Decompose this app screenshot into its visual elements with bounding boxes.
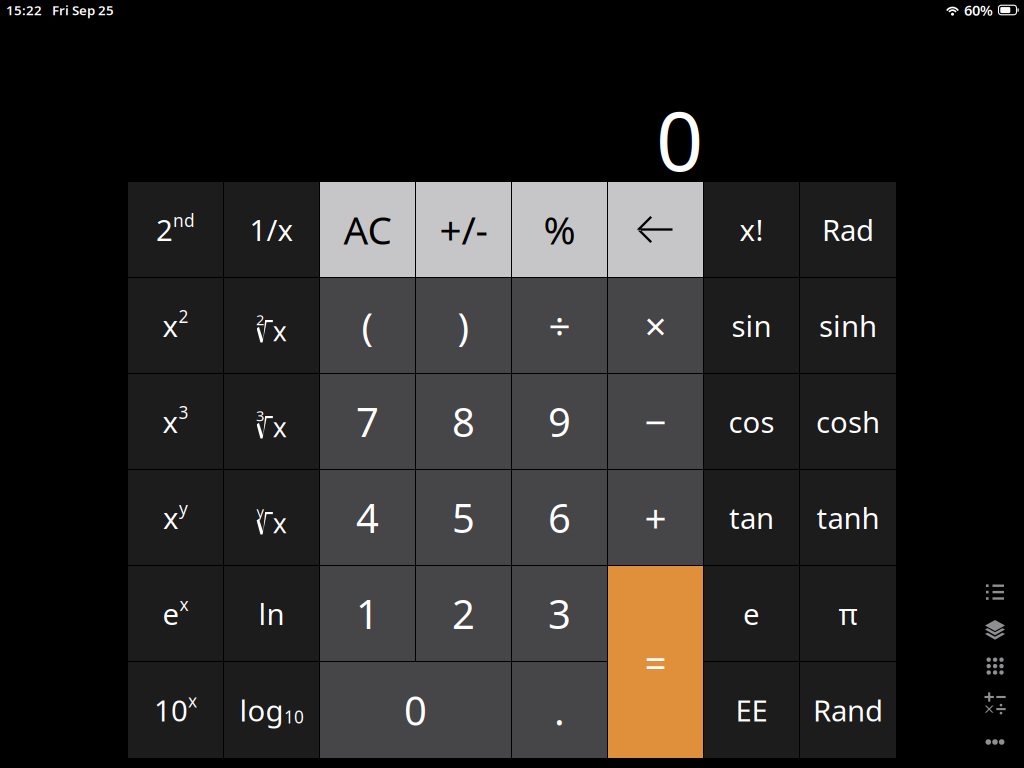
staticText: . bbox=[554, 683, 565, 736]
button[interactable]: x to the 3 bbox=[128, 374, 223, 469]
button[interactable]: tanh bbox=[800, 470, 896, 565]
button[interactable]: Paper tape bbox=[973, 612, 1017, 648]
staticText: π bbox=[838, 594, 857, 633]
button[interactable]: History bbox=[973, 574, 1017, 610]
staticText: 10 bbox=[284, 705, 304, 728]
button[interactable]: 3 bbox=[512, 566, 607, 661]
button[interactable]: % bbox=[512, 182, 607, 277]
staticText: 3 bbox=[548, 587, 571, 640]
staticText: 3 bbox=[178, 401, 188, 424]
staticText: +/- bbox=[439, 204, 487, 255]
button[interactable]: 8 bbox=[416, 374, 511, 469]
staticText: 9 bbox=[548, 395, 571, 448]
staticText: ) bbox=[457, 300, 469, 351]
button[interactable]: e bbox=[704, 566, 799, 661]
staticText: 2 bbox=[452, 587, 475, 640]
staticText: x bbox=[273, 313, 287, 349]
staticText: 1 bbox=[356, 587, 379, 640]
button[interactable]: 2 root of x bbox=[224, 278, 319, 373]
button[interactable]: AC bbox=[320, 182, 415, 277]
button[interactable]: 2 bbox=[416, 566, 511, 661]
button[interactable]: 4 bbox=[320, 470, 415, 565]
button[interactable]: Rand bbox=[800, 662, 896, 758]
staticText: Rand bbox=[813, 690, 883, 729]
staticText: 2 bbox=[156, 210, 173, 249]
staticText: log bbox=[239, 690, 283, 729]
staticText: nd bbox=[173, 209, 195, 232]
button[interactable]: 0 bbox=[320, 662, 511, 758]
staticText: ÷ bbox=[548, 300, 570, 351]
button[interactable]: sin bbox=[704, 278, 799, 373]
button[interactable]: ln bbox=[224, 566, 319, 661]
button[interactable]: 9 bbox=[512, 374, 607, 469]
staticText: 6 bbox=[548, 491, 571, 544]
staticText: AC bbox=[343, 204, 391, 255]
staticText: ln bbox=[258, 594, 284, 633]
button[interactable]: y root of x bbox=[224, 470, 319, 565]
staticText: sin bbox=[731, 306, 771, 345]
button[interactable]: + bbox=[608, 470, 703, 565]
staticText: 5 bbox=[452, 491, 475, 544]
button[interactable]: Scientific keypad bbox=[973, 685, 1017, 721]
staticText: = bbox=[644, 636, 666, 688]
button[interactable]: 6 bbox=[512, 470, 607, 565]
staticText: 15:22 bbox=[6, 1, 42, 19]
staticText: × bbox=[644, 300, 666, 351]
button[interactable]: cosh bbox=[800, 374, 896, 469]
staticText: 3 bbox=[256, 406, 264, 425]
button[interactable]: x to the 2 bbox=[128, 278, 223, 373]
button[interactable]: x! bbox=[704, 182, 799, 277]
staticText: 4 bbox=[356, 491, 379, 544]
staticText: % bbox=[543, 204, 575, 255]
staticText: 8 bbox=[452, 395, 475, 448]
staticText: x bbox=[163, 498, 179, 537]
staticText: tan bbox=[729, 498, 774, 537]
staticText: x bbox=[273, 505, 287, 541]
button[interactable]: π bbox=[800, 566, 896, 661]
button[interactable]: 7 bbox=[320, 374, 415, 469]
staticText: x bbox=[188, 689, 197, 712]
button[interactable]: 2 to the nd bbox=[128, 182, 223, 277]
button[interactable]: x to the y bbox=[128, 470, 223, 565]
button[interactable]: 3 root of x bbox=[224, 374, 319, 469]
staticText: x bbox=[273, 409, 287, 445]
staticText: e bbox=[743, 594, 760, 633]
button[interactable]: 10 to the x bbox=[128, 662, 223, 758]
staticText: + bbox=[644, 492, 666, 543]
button[interactable]: Backspace bbox=[608, 182, 703, 277]
button[interactable]: ÷ bbox=[512, 278, 607, 373]
button[interactable]: ) bbox=[416, 278, 511, 373]
button[interactable]: = bbox=[608, 566, 703, 758]
button[interactable]: ( bbox=[320, 278, 415, 373]
staticText: 10 bbox=[154, 690, 188, 729]
staticText: tanh bbox=[816, 498, 879, 537]
staticText: x bbox=[179, 593, 188, 616]
button[interactable]: tan bbox=[704, 470, 799, 565]
button[interactable]: 1 bbox=[320, 566, 415, 661]
button[interactable]: log base 10 bbox=[224, 662, 319, 758]
button[interactable]: EE bbox=[704, 662, 799, 758]
button[interactable]: +/- bbox=[416, 182, 511, 277]
button[interactable]: 5 bbox=[416, 470, 511, 565]
button[interactable]: More bbox=[973, 724, 1017, 760]
button[interactable]: . bbox=[512, 662, 607, 758]
button[interactable]: × bbox=[608, 278, 703, 373]
staticText: Rad bbox=[822, 210, 874, 249]
staticText: cos bbox=[728, 402, 774, 441]
staticText: x bbox=[162, 402, 178, 441]
staticText: x! bbox=[739, 210, 763, 249]
staticText: EE bbox=[735, 690, 767, 729]
button[interactable]: sinh bbox=[800, 278, 896, 373]
button[interactable]: 1/x bbox=[224, 182, 319, 277]
staticText: ( bbox=[361, 300, 373, 351]
button[interactable]: cos bbox=[704, 374, 799, 469]
staticText: y bbox=[256, 502, 263, 521]
staticText: sinh bbox=[819, 306, 877, 345]
button[interactable]: − bbox=[608, 374, 703, 469]
staticText: x bbox=[162, 306, 178, 345]
button[interactable]: Basic keypad bbox=[973, 648, 1017, 684]
button[interactable]: e to the x bbox=[128, 566, 223, 661]
staticText: Fri Sep 25 bbox=[52, 1, 114, 19]
staticText: y bbox=[179, 497, 188, 520]
button[interactable]: Rad bbox=[800, 182, 896, 277]
